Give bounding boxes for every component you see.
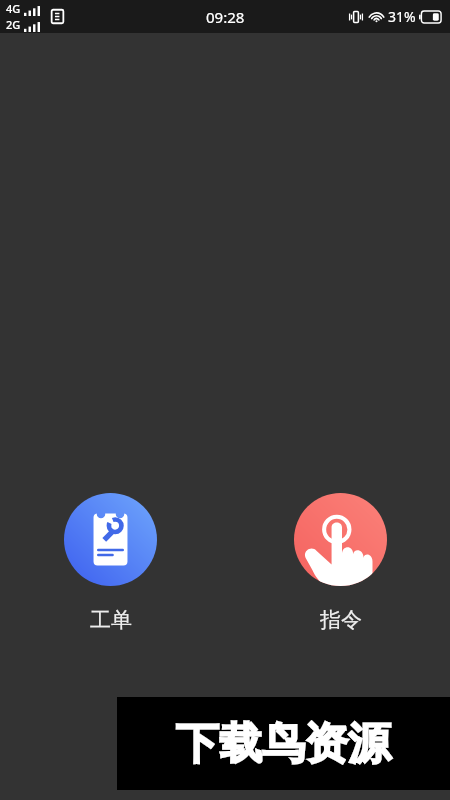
button[interactable]: 工单 bbox=[60, 493, 161, 633]
staticText: 下载鸟资源 bbox=[176, 717, 391, 771]
staticText: 指令 bbox=[320, 607, 362, 633]
staticText: 31% bbox=[388, 7, 416, 26]
staticText: 2G bbox=[6, 17, 21, 32]
staticText: 4G bbox=[6, 1, 21, 16]
staticText: 工单 bbox=[90, 607, 132, 633]
button[interactable]: 指令 bbox=[290, 493, 391, 633]
staticText: 09:28 bbox=[206, 7, 245, 27]
